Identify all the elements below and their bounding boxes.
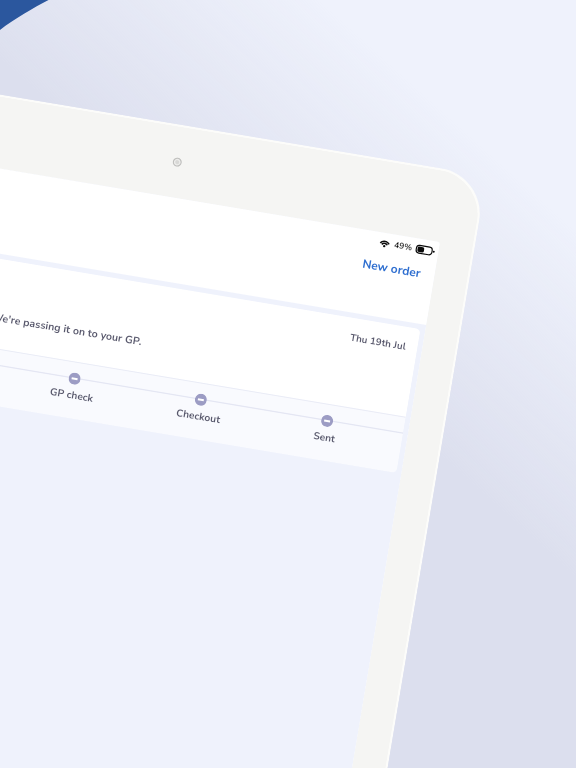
staticText: We're passing it on to your GP. — [0, 309, 143, 348]
button[interactable]: Checkout — [134, 373, 267, 434]
other: Battery 49 percent — [415, 244, 435, 256]
staticText: 49% — [393, 239, 414, 254]
staticText: GP check — [49, 385, 95, 406]
button[interactable]: GP check — [7, 352, 140, 413]
staticText: Sent — [312, 429, 336, 446]
button[interactable]: New order — [355, 252, 428, 285]
button[interactable]: Delivery — [0, 331, 14, 392]
other: Wi-Fi — [379, 238, 391, 248]
staticText: Thu 19th Jul — [349, 331, 408, 353]
button[interactable]: Sent — [260, 395, 393, 455]
staticText: Checkout — [175, 406, 222, 427]
staticText: New order — [361, 256, 422, 281]
button[interactable]: Thu 19th Jul — [0, 240, 421, 473]
